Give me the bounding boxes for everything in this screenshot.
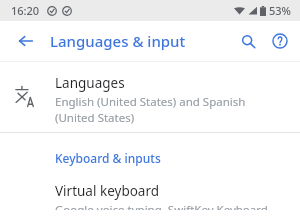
staticText: Google voice typing, SwiftKey Keyboard, … bbox=[55, 202, 290, 210]
button[interactable]: Back bbox=[12, 27, 40, 55]
staticText: Languages bbox=[55, 74, 125, 92]
staticText: 53% bbox=[269, 3, 291, 18]
staticText: Keyboard & inputs bbox=[55, 150, 161, 166]
button[interactable]: Languages bbox=[0, 62, 300, 132]
staticText: Virtual keyboard bbox=[55, 182, 160, 200]
staticText: Languages & input bbox=[50, 31, 186, 51]
button[interactable]: Help bbox=[266, 27, 294, 55]
button[interactable]: Search bbox=[234, 27, 262, 55]
button[interactable]: Virtual keyboard bbox=[0, 180, 300, 220]
staticText: 16:20 bbox=[11, 3, 40, 18]
staticText: English (United States) and Spanish (Uni… bbox=[55, 94, 286, 125]
